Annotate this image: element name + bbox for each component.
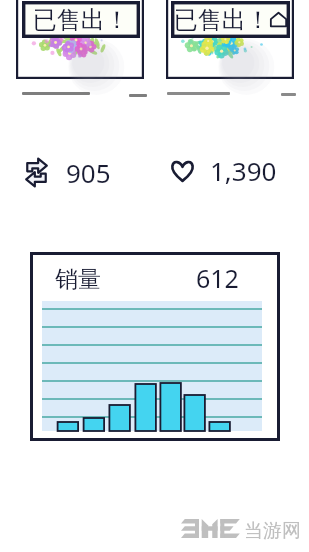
button[interactable]: 销量 bbox=[30, 252, 280, 441]
staticText: 612 bbox=[196, 261, 239, 295]
button[interactable]: Like bbox=[171, 153, 277, 188]
other: Repost bbox=[26, 158, 47, 187]
staticText: 1,390 bbox=[210, 153, 277, 188]
button[interactable]: 已售出！ bbox=[166, 0, 294, 79]
staticText: 已售出！ bbox=[33, 5, 129, 35]
button[interactable]: Repost bbox=[26, 155, 111, 190]
staticText: 905 bbox=[66, 155, 111, 190]
staticText: 当游网 bbox=[244, 519, 301, 543]
other: Like bbox=[171, 160, 194, 182]
staticText: 已售出！ bbox=[174, 5, 270, 35]
staticText: 销量 bbox=[55, 265, 101, 294]
button[interactable]: 已售出！ bbox=[16, 0, 144, 79]
